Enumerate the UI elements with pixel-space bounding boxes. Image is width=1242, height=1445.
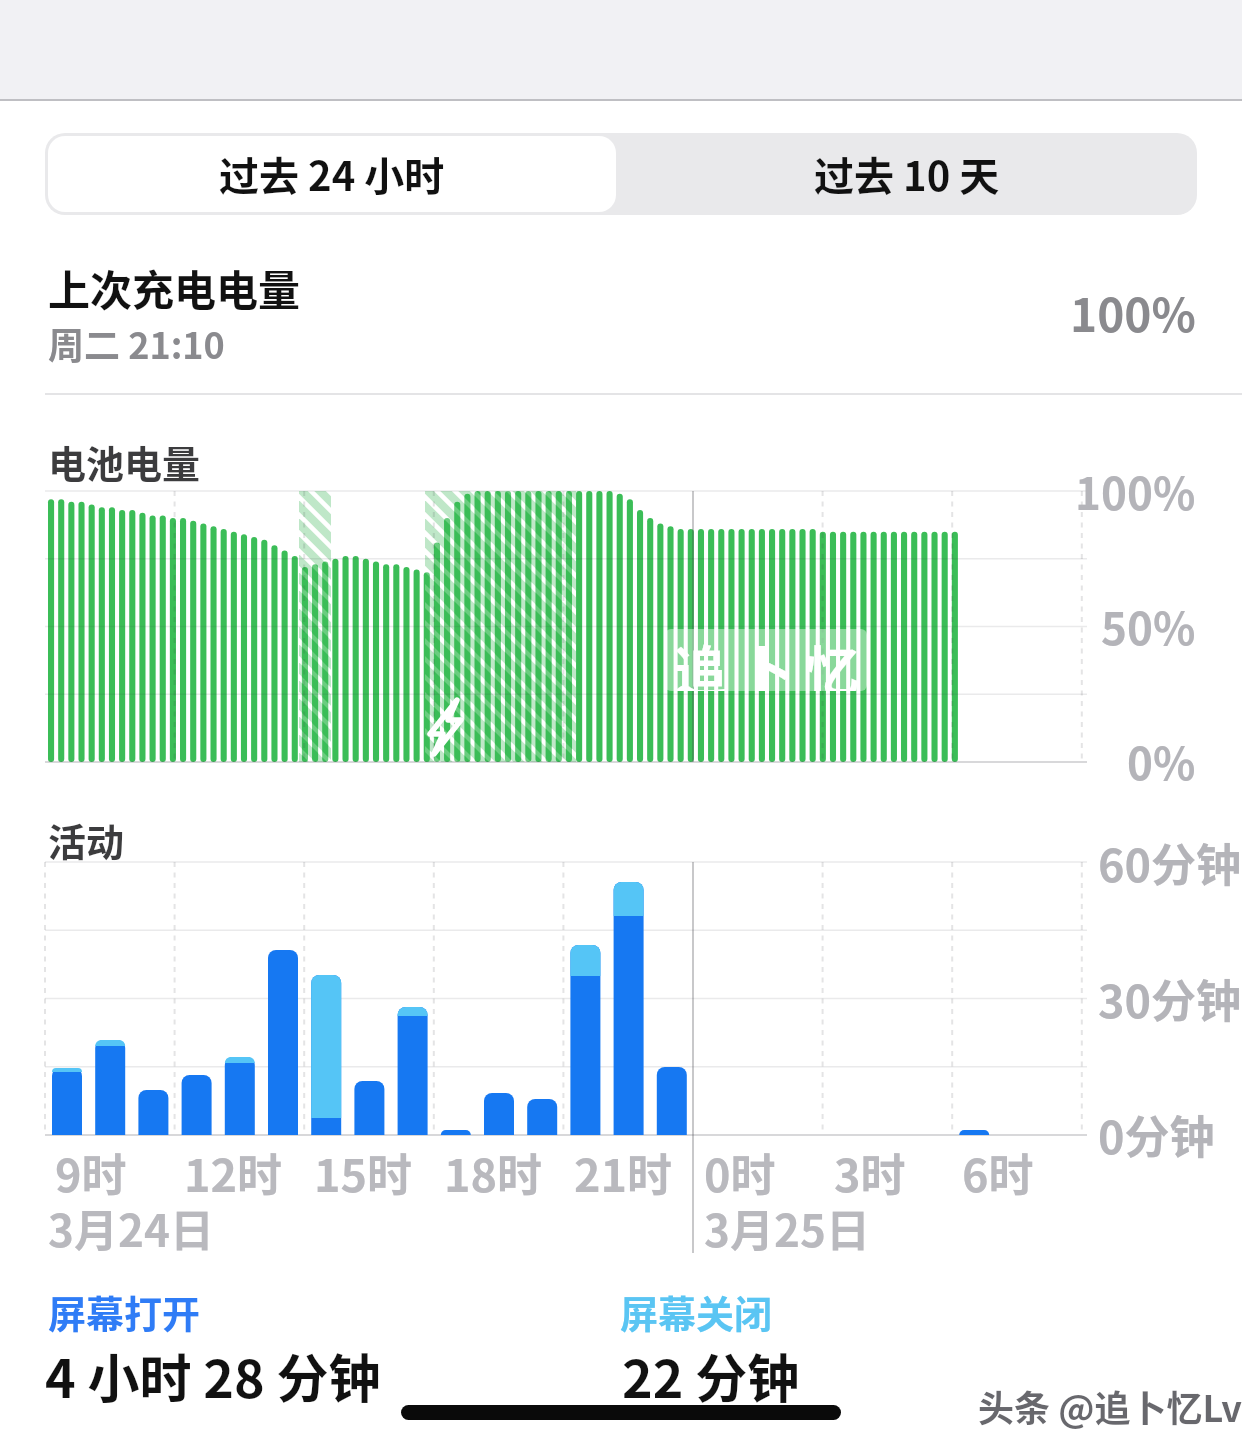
button[interactable]: 屏幕关闭 [620,1284,798,1359]
staticText: 3时 [834,1140,906,1205]
staticText: 50% [1101,594,1196,658]
staticText: 100% [1070,279,1196,346]
staticText: 21时 [574,1140,673,1205]
staticText: 3月25日 [704,1196,870,1260]
button[interactable]: 屏幕打开 [45,1284,381,1359]
staticText: 追 卜 忆 [673,629,860,691]
staticText: 9时 [55,1140,127,1205]
staticText: 22 分钟 [622,1338,800,1413]
staticText: 过去 10 天 [814,145,1000,203]
staticText: 3月24日 [48,1196,214,1260]
staticText: 上次充电电量 [48,257,301,318]
staticText: 60分钟 [1098,830,1242,895]
staticText: 0时 [704,1140,776,1205]
staticText: 过去 24 小时 [219,145,445,203]
staticText: 屏幕打开 [48,1284,201,1339]
staticText: 电池电量 [48,434,201,489]
staticText: 4 小时 28 分钟 [45,1338,381,1413]
staticText: 12时 [184,1140,283,1205]
staticText: 0% [1127,729,1196,793]
staticText: 30分钟 [1098,966,1242,1031]
staticText: 头条 @追卜忆Lv [978,1380,1242,1432]
staticText: 100% [1075,459,1196,523]
button[interactable]: 过去 24 小时 [48,136,616,212]
button[interactable]: 过去 10 天 [620,136,1194,212]
staticText: 周二 21:10 [48,317,225,369]
staticText: 15时 [314,1140,413,1205]
staticText: 屏幕关闭 [620,1284,773,1339]
staticText: 6时 [962,1140,1034,1205]
staticText: 18时 [444,1140,543,1205]
staticText: 活动 [48,812,125,867]
staticText: 0分钟 [1098,1102,1215,1167]
